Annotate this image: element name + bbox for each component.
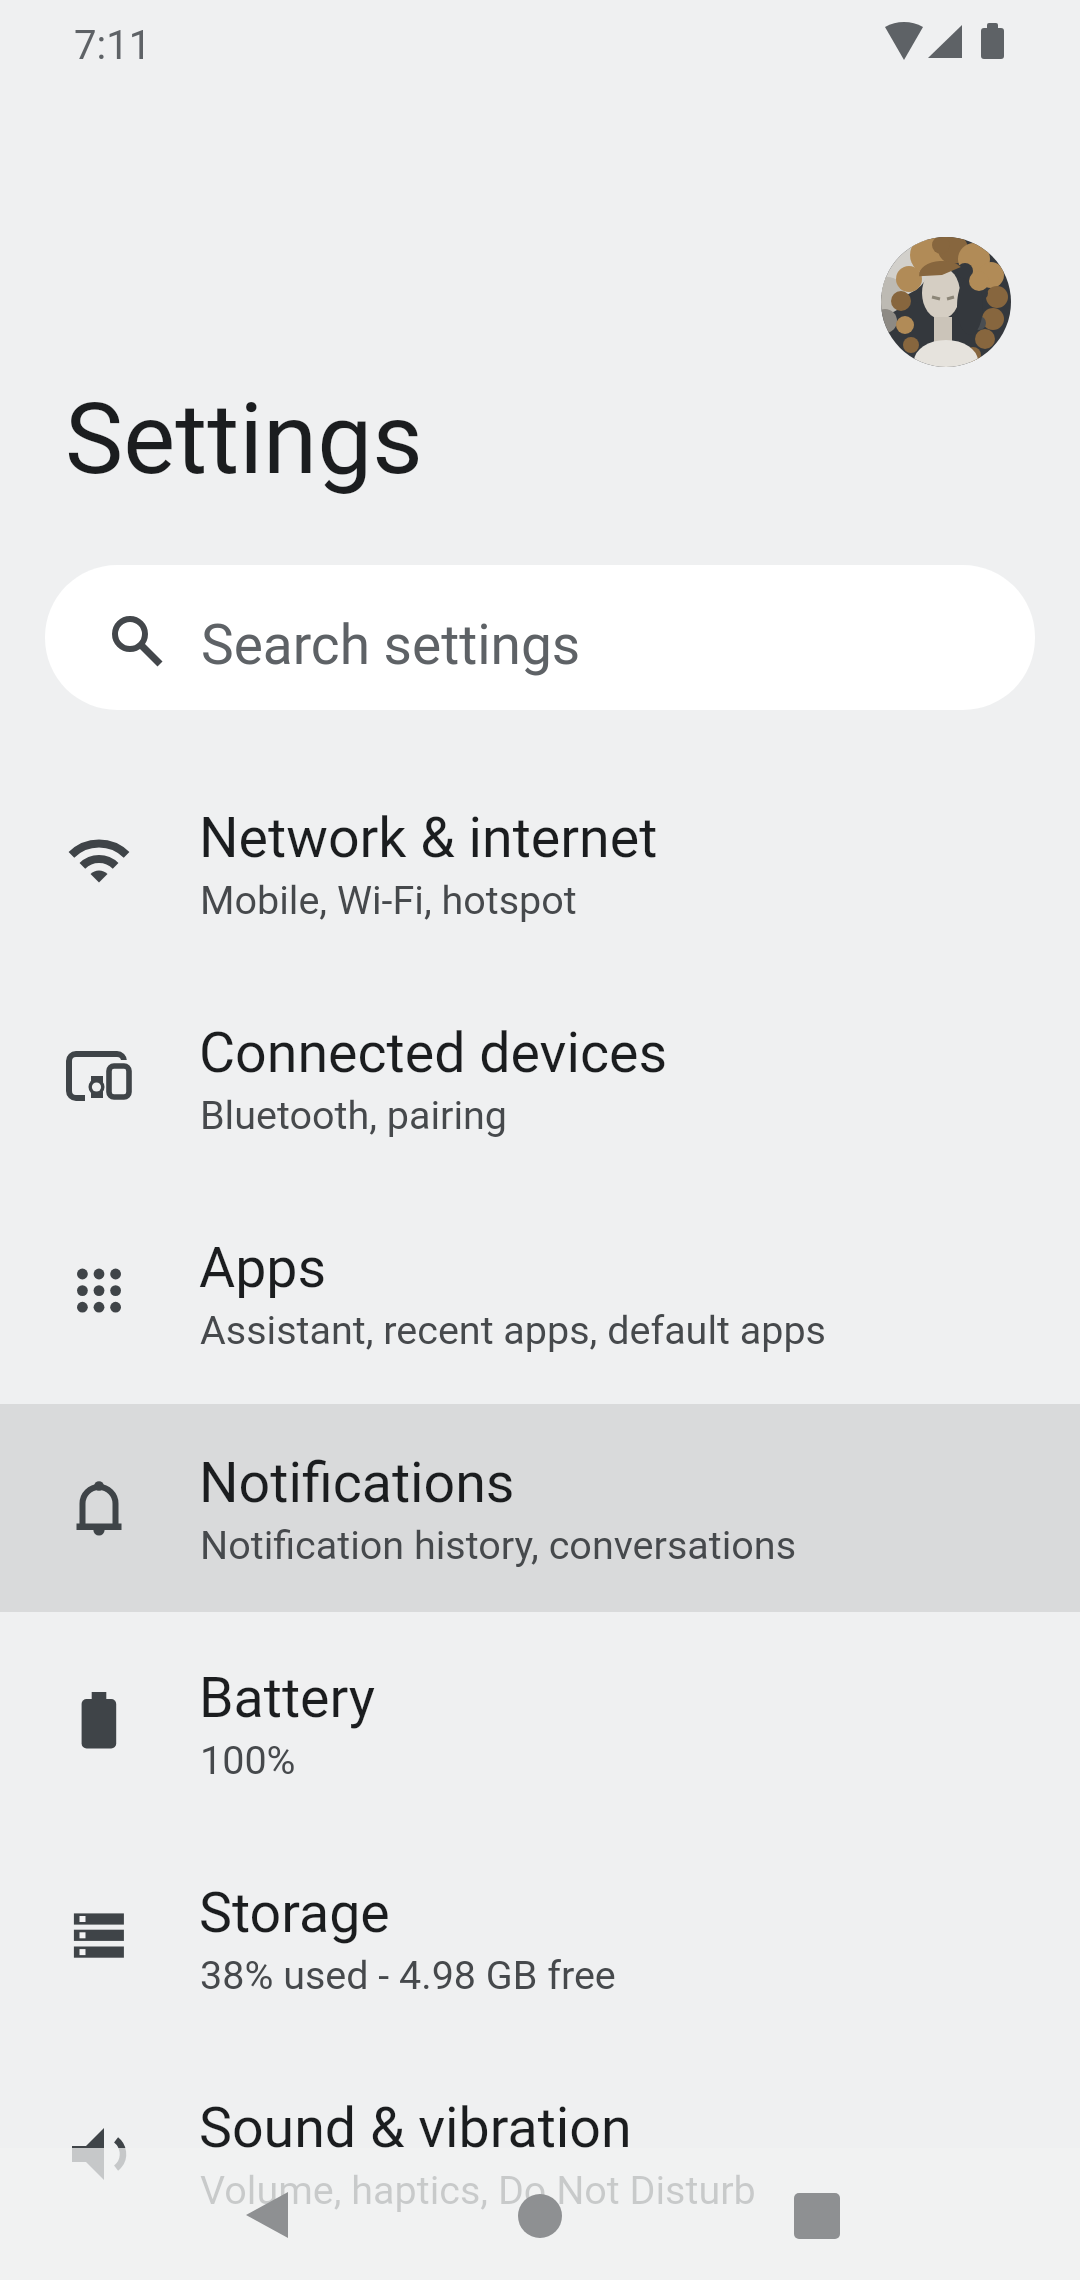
- button[interactable]: Notifications: [0, 1393, 1080, 1608]
- staticText: Storage: [199, 1881, 390, 1946]
- button[interactable]: Search settings: [45, 565, 1035, 710]
- button[interactable]: Connected devices: [0, 963, 1080, 1178]
- staticText: Search settings: [201, 613, 581, 677]
- staticText: Sound & vibration: [199, 2096, 632, 2161]
- staticText: Battery: [199, 1666, 376, 1731]
- button[interactable]: Battery: [0, 1608, 1080, 1823]
- staticText: Mobile, Wi-Fi, hotspot: [200, 877, 577, 923]
- staticText: Bluetooth, pairing: [200, 1092, 508, 1138]
- button[interactable]: [881, 237, 1011, 367]
- staticText: Assistant, recent apps, default apps: [200, 1307, 826, 1353]
- button[interactable]: Network & internet: [0, 748, 1080, 963]
- staticText: Network & internet: [199, 806, 658, 871]
- staticText: 100%: [200, 1737, 296, 1783]
- staticText: Apps: [199, 1236, 327, 1301]
- staticText: 38% used - 4.98 GB free: [200, 1952, 616, 1998]
- button[interactable]: [215, 2188, 315, 2248]
- button[interactable]: Sound & vibration: [0, 2038, 1080, 2253]
- button[interactable]: [765, 2188, 865, 2248]
- button[interactable]: [490, 2188, 590, 2248]
- staticText: 7:11: [74, 22, 152, 69]
- staticText: Notifications: [199, 1451, 515, 1516]
- staticText: Settings: [65, 382, 423, 497]
- staticText: Connected devices: [199, 1021, 668, 1086]
- staticText: Volume, haptics, Do Not Disturb: [200, 2167, 756, 2213]
- button[interactable]: Storage: [0, 1823, 1080, 2038]
- button[interactable]: Apps: [0, 1178, 1080, 1393]
- staticText: Notification history, conversations: [200, 1522, 797, 1568]
